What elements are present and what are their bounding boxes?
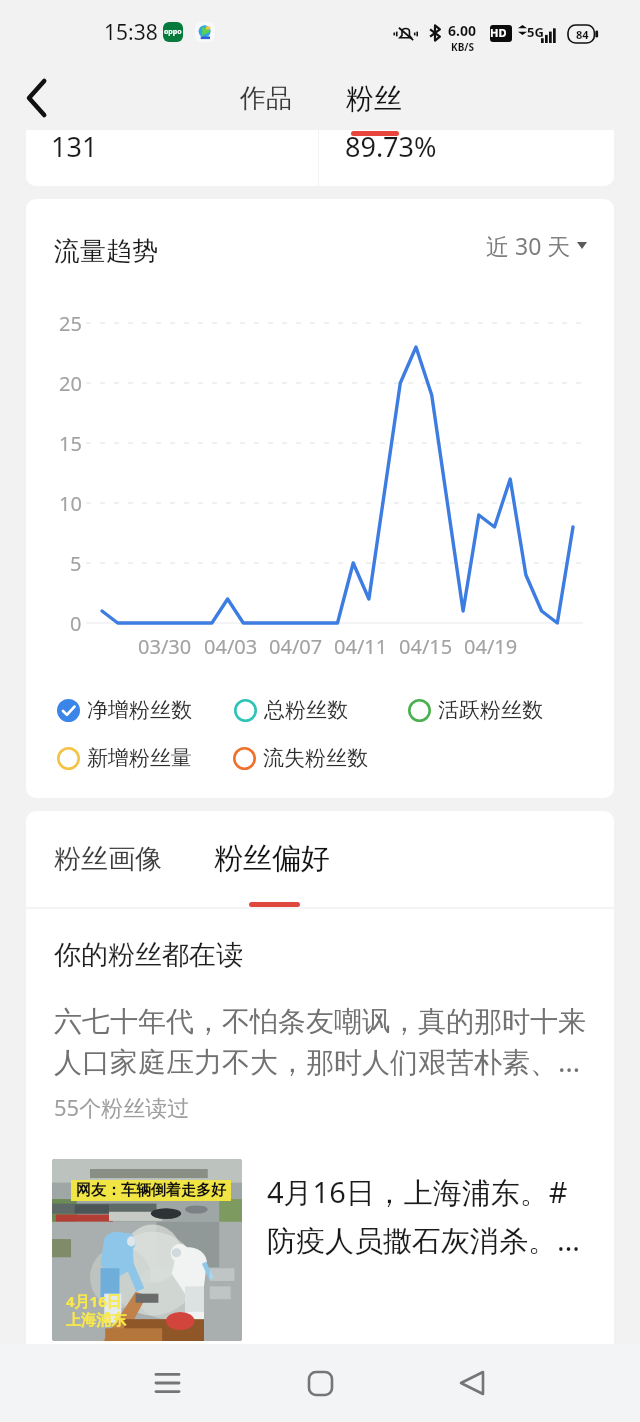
staticText: KB/S: [451, 40, 474, 54]
button[interactable]: 131: [26, 130, 318, 186]
staticText: 近 30 天: [486, 230, 571, 261]
staticText: 4月16日，上海浦东。# 防疫人员撒石灰消杀。…: [267, 1172, 580, 1260]
button[interactable]: Back: [432, 1344, 512, 1422]
button[interactable]: 总粉丝数: [234, 697, 348, 723]
staticText: 新增粉丝量: [87, 745, 192, 771]
staticText: 04/11: [334, 633, 388, 660]
staticText: 03/30: [138, 633, 192, 660]
staticText: 04/15: [399, 633, 453, 660]
staticText: 六七十年代，不怕条友嘲讽，真的那时十来 人口家庭压力不大，那时人们艰苦朴素、…: [54, 1004, 586, 1081]
button[interactable]: 89.73%: [319, 130, 614, 186]
button[interactable]: Recent apps: [127, 1344, 207, 1422]
staticText: 流量趋势: [54, 235, 158, 268]
staticText: HD1: [490, 25, 512, 42]
staticText: 你的粉丝都在读: [54, 938, 243, 972]
staticText: 作品: [240, 82, 292, 115]
staticText: 粉丝: [346, 81, 402, 116]
staticText: 04/07: [269, 633, 323, 660]
staticText: 净增粉丝数: [87, 697, 192, 723]
staticText: 总粉丝数: [264, 697, 348, 723]
button[interactable]: 作品: [216, 73, 316, 123]
staticText: 流失粉丝数: [263, 745, 368, 771]
button[interactable]: Back: [14, 75, 60, 121]
staticText: 上海浦东: [66, 1311, 126, 1330]
staticText: 网友：车辆倒着走多好: [76, 1181, 226, 1200]
staticText: oppo: [164, 27, 182, 37]
staticText: 20: [59, 370, 82, 397]
staticText: 131: [51, 130, 98, 165]
staticText: 10: [59, 490, 82, 517]
staticText: 15:38: [104, 18, 158, 47]
button[interactable]: 粉丝画像: [42, 829, 174, 889]
button[interactable]: 活跃粉丝数: [408, 697, 543, 723]
button[interactable]: 粉丝: [324, 73, 424, 123]
button[interactable]: 净增粉丝数: [57, 697, 192, 723]
staticText: 粉丝画像: [54, 842, 162, 876]
button[interactable]: 粉丝偏好: [204, 826, 340, 890]
button[interactable]: 新增粉丝量: [57, 745, 192, 771]
staticText: 4月16日: [66, 1291, 122, 1311]
staticText: 5: [70, 550, 82, 577]
staticText: 89.73%: [345, 130, 437, 165]
staticText: 04/19: [464, 633, 518, 660]
staticText: 5G: [527, 23, 544, 41]
button[interactable]: 近 30 天: [480, 220, 593, 271]
staticText: 04/03: [204, 633, 258, 660]
staticText: 6.00: [448, 21, 476, 40]
staticText: 84: [576, 27, 589, 42]
staticText: 0: [70, 610, 82, 637]
staticText: 粉丝偏好: [214, 840, 330, 877]
staticText: 15: [59, 430, 82, 457]
staticText: 活跃粉丝数: [438, 697, 543, 723]
staticText: 25: [59, 310, 82, 337]
button[interactable]: Home: [280, 1344, 360, 1422]
button[interactable]: 网友：车辆倒着走多好: [26, 1159, 614, 1344]
staticText: 55个粉丝读过: [54, 1092, 190, 1122]
button[interactable]: 流失粉丝数: [233, 745, 368, 771]
